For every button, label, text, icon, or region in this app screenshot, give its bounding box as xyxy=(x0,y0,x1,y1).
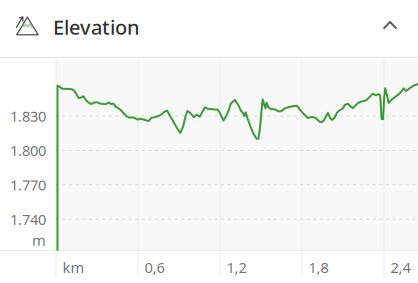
button[interactable]: Elevation xyxy=(0,0,418,57)
staticText: 0,6 xyxy=(145,258,165,277)
staticText: 1,2 xyxy=(227,258,247,277)
staticText: 1.830 xyxy=(10,106,46,126)
staticText: 2,4 xyxy=(391,258,411,277)
staticText: 1.770 xyxy=(10,175,46,195)
staticText: 1.800 xyxy=(10,141,46,160)
staticText: Elevation xyxy=(53,14,140,40)
staticText: m xyxy=(32,230,46,250)
staticText: 1.740 xyxy=(10,209,46,229)
staticText: 1,8 xyxy=(309,258,329,277)
staticText: km xyxy=(63,258,85,277)
